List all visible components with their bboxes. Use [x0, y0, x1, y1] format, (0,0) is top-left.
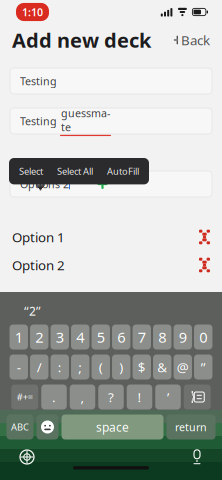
staticText: 4 — [76, 327, 84, 347]
button[interactable]: Select — [12, 158, 50, 184]
staticText: 5 — [97, 327, 105, 347]
button[interactable]: space — [61, 414, 163, 439]
staticText: Add new deck — [12, 27, 151, 53]
staticText: - — [17, 358, 21, 376]
staticText: ( — [99, 358, 103, 376]
staticText: Select — [19, 165, 43, 177]
button[interactable]: 0 — [194, 324, 212, 349]
staticText: ? — [108, 388, 114, 406]
button[interactable]: ! — [127, 384, 152, 409]
button[interactable]: . — [41, 384, 67, 409]
button[interactable]: : — [50, 354, 69, 379]
button[interactable]: / — [30, 354, 48, 379]
button[interactable]: Add option — [94, 174, 111, 193]
staticText: ’ — [167, 388, 169, 406]
button[interactable]: 2 — [30, 324, 48, 349]
staticText: 9 — [179, 327, 187, 347]
staticText: ) — [119, 358, 123, 376]
staticText: 8 — [158, 327, 166, 347]
button[interactable]: Emoji — [36, 414, 58, 439]
button[interactable]: Back — [163, 25, 210, 55]
button[interactable]: 6 — [112, 324, 130, 349]
staticText: / — [37, 358, 42, 376]
staticText: 2 — [35, 327, 43, 347]
staticText: guessmate — [61, 106, 110, 134]
staticText: Option 2 — [12, 256, 65, 274]
staticText: Option 1 — [12, 228, 65, 246]
staticText: $ — [138, 358, 146, 376]
staticText: ; — [78, 358, 82, 376]
staticText: #+= — [17, 391, 33, 403]
button[interactable]: @ — [173, 354, 192, 379]
staticText: return — [175, 420, 207, 434]
staticText: 1:10 — [22, 5, 43, 19]
button[interactable]: Option 2 — [0, 254, 222, 276]
staticText: 1 — [15, 327, 23, 347]
staticText: 3 — [56, 327, 64, 347]
button[interactable]: Delete — [184, 384, 211, 409]
staticText: space — [96, 419, 129, 435]
button[interactable]: 9 — [173, 324, 192, 349]
button[interactable]: $ — [132, 354, 151, 379]
staticText: ABC — [11, 421, 29, 433]
button[interactable]: Dictation — [183, 440, 211, 473]
button[interactable]: 5 — [91, 324, 110, 349]
staticText: . — [52, 388, 56, 406]
staticText: & — [157, 358, 167, 376]
button[interactable]: ; — [71, 354, 89, 379]
button[interactable]: 1 — [9, 324, 28, 349]
button[interactable]: & — [153, 354, 171, 379]
button[interactable]: Select All — [50, 158, 100, 184]
button[interactable]: Option 1 — [0, 226, 222, 248]
staticText: “2” — [24, 303, 41, 319]
staticText: 6 — [117, 327, 125, 347]
button[interactable]: 4 — [71, 324, 89, 349]
staticText: Testing — [20, 114, 57, 128]
staticText: Options 2 — [20, 177, 69, 191]
staticText: Testing — [20, 74, 57, 88]
button[interactable]: ? — [98, 384, 124, 409]
button[interactable]: , — [70, 384, 95, 409]
button[interactable]: ” — [194, 354, 212, 379]
staticText: , — [80, 388, 84, 406]
button[interactable]: return — [166, 414, 215, 439]
staticText: AutoFill — [107, 165, 139, 177]
button[interactable]: #+= — [11, 384, 38, 409]
button[interactable]: 7 — [132, 324, 151, 349]
button[interactable]: ( — [91, 354, 110, 379]
staticText: Select All — [57, 165, 93, 177]
button[interactable]: ABC — [6, 414, 33, 439]
staticText: 0 — [199, 327, 207, 347]
button[interactable]: - — [9, 354, 28, 379]
staticText: ” — [201, 358, 206, 376]
staticText: Back — [181, 31, 210, 49]
button[interactable]: 8 — [153, 324, 171, 349]
button[interactable]: ’ — [155, 384, 181, 409]
button[interactable]: 3 — [50, 324, 69, 349]
button[interactable]: Next keyboard — [11, 441, 43, 473]
staticText: @ — [177, 358, 189, 376]
staticText: ! — [137, 388, 141, 406]
staticText: : — [58, 358, 62, 376]
staticText: 7 — [138, 327, 146, 347]
button[interactable]: ) — [112, 354, 130, 379]
button[interactable]: AutoFill — [100, 158, 146, 184]
